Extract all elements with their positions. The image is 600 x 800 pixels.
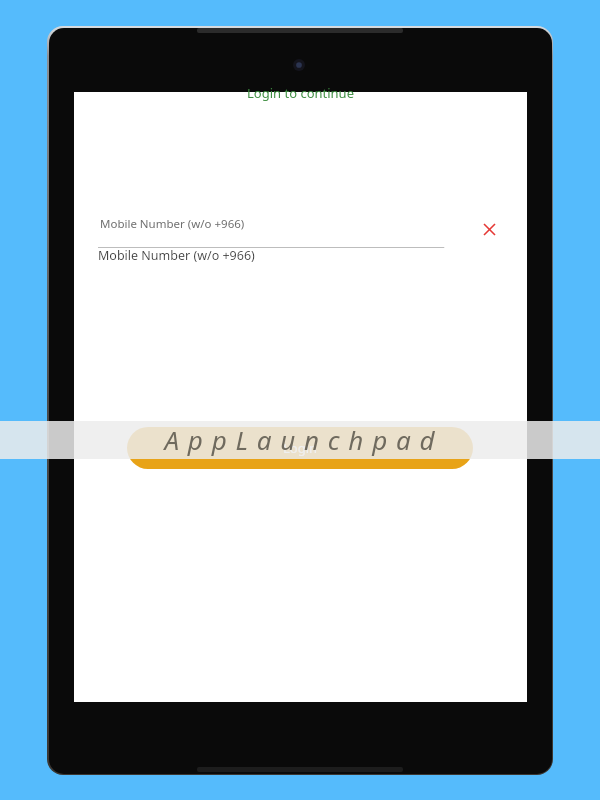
button[interactable]: Login xyxy=(127,427,473,469)
staticText: Mobile Number (w/o +966) xyxy=(100,216,505,232)
staticText: Mobile Number (w/o +966) xyxy=(98,247,255,264)
button[interactable]: Clear mobile number xyxy=(474,214,504,244)
staticText: A p p L a u n c h p a d xyxy=(164,422,436,457)
staticText: Login to continue xyxy=(74,84,527,102)
staticText: Login xyxy=(283,439,318,457)
button[interactable]: Mobile Number (w/o +966) xyxy=(98,210,503,248)
